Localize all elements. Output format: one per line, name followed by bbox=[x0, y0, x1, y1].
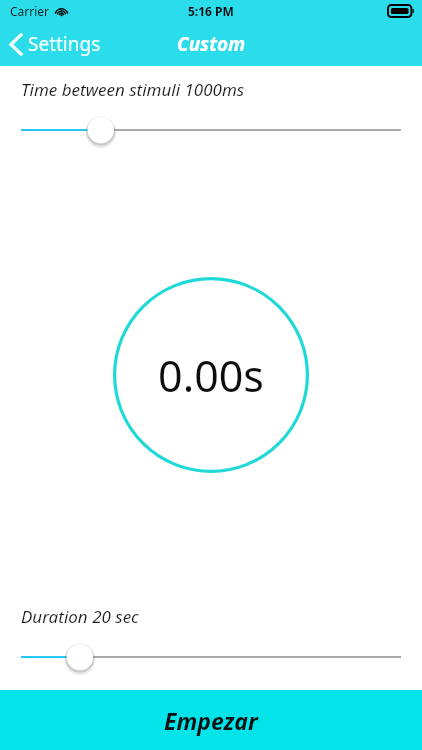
staticText: Duration 20 sec bbox=[21, 605, 139, 628]
staticText: 0.00s bbox=[158, 346, 264, 405]
staticText: Custom bbox=[177, 31, 246, 57]
other: Back bbox=[10, 34, 22, 55]
button[interactable]: Back bbox=[0, 27, 115, 61]
staticText: Settings bbox=[28, 31, 101, 57]
button[interactable]: Slider bbox=[0, 115, 422, 145]
button[interactable]: Empezar bbox=[0, 690, 422, 750]
staticText: 5:16 PM bbox=[188, 3, 234, 19]
staticText: Carrier bbox=[10, 3, 50, 19]
button[interactable]: Slider bbox=[0, 642, 422, 672]
staticText: Empezar bbox=[164, 705, 258, 736]
staticText: Time between stimuli 1000ms bbox=[21, 78, 245, 101]
